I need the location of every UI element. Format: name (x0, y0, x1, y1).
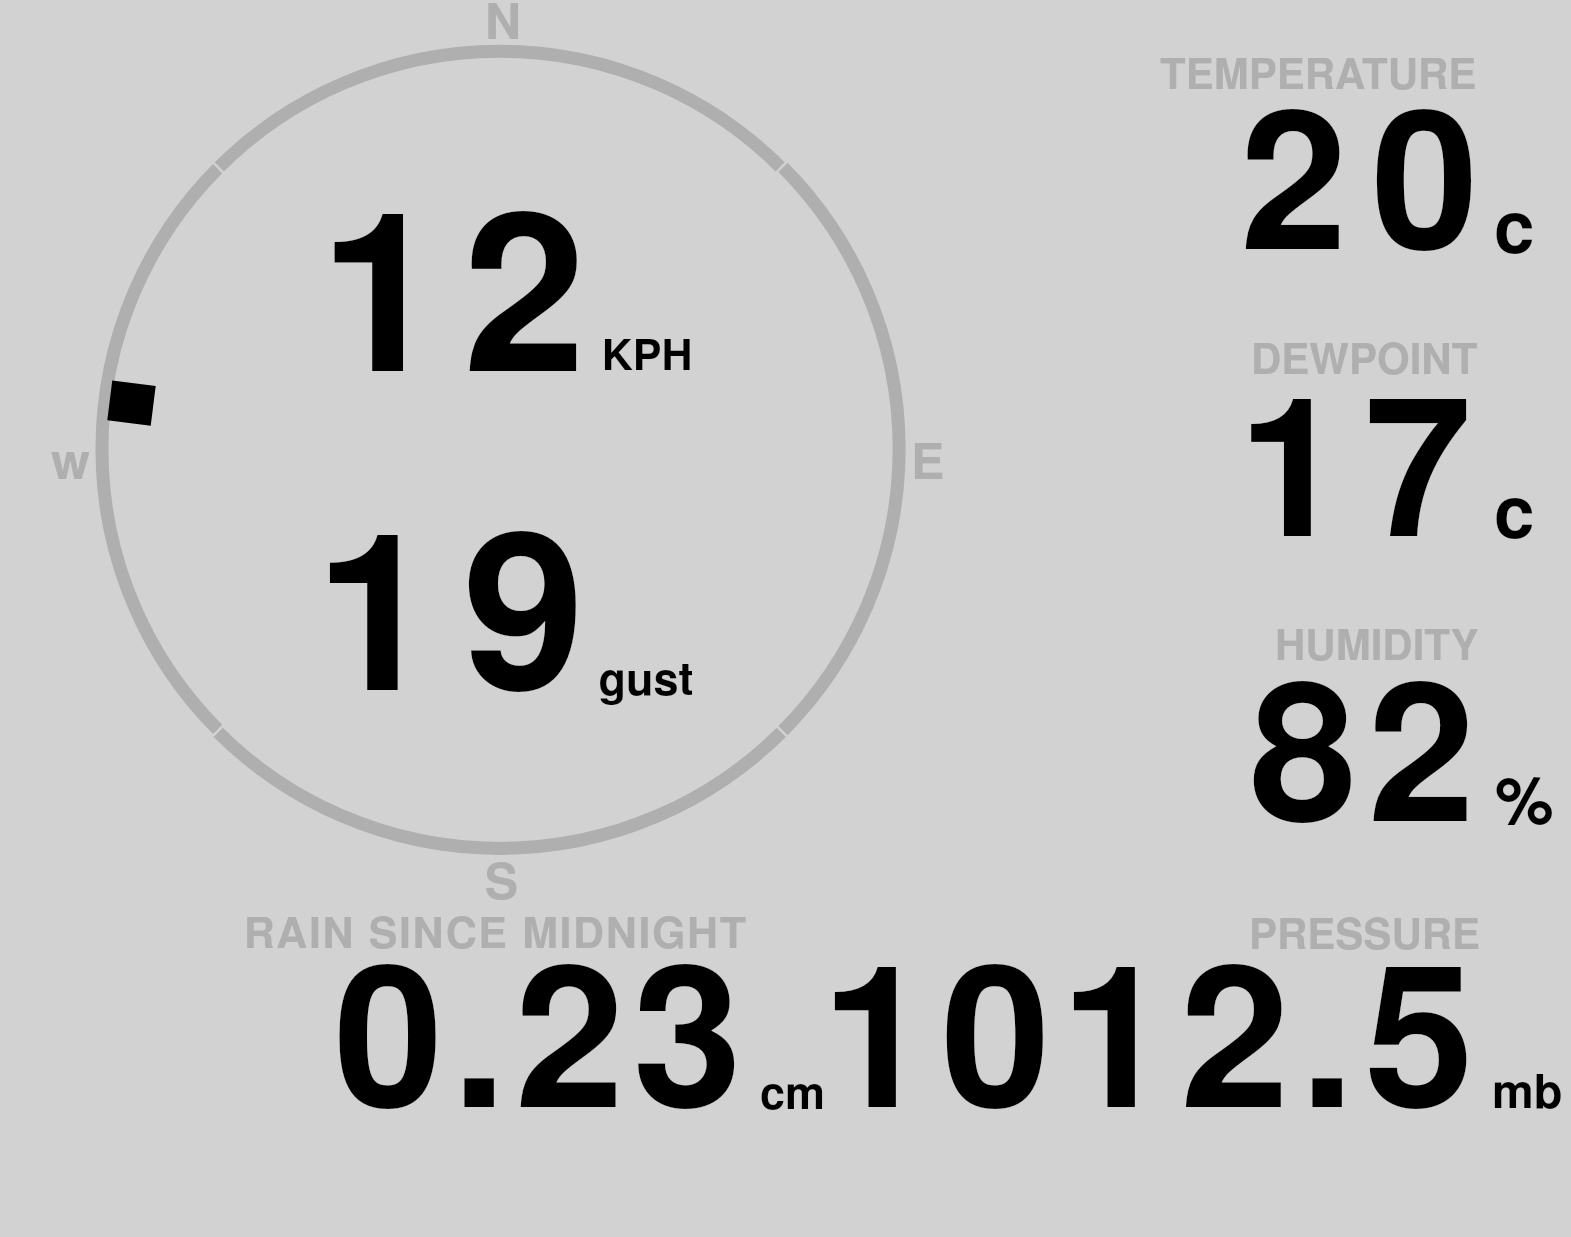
button[interactable]: Dewpoint 17 c (1120, 300, 1571, 560)
button[interactable]: Wind 12 KPH gusting 19, direction west (60, 10, 940, 900)
button[interactable]: Rain since midnight 0.23 cm (200, 900, 840, 1130)
button[interactable]: Humidity 82 % (1120, 590, 1571, 850)
button[interactable]: Temperature 20 c (1120, 30, 1571, 270)
button[interactable]: Pressure 1012.5 mb (840, 900, 1571, 1130)
